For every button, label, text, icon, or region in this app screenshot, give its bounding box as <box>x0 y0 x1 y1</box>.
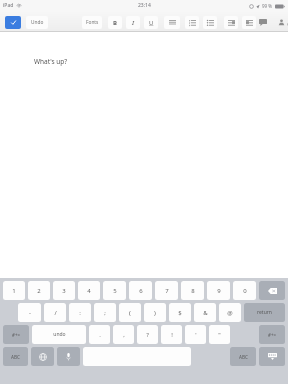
staticText: 2 <box>37 287 41 295</box>
staticText: 3 <box>62 287 66 295</box>
button[interactable]: 7 <box>155 281 178 300</box>
staticText: ! <box>171 331 173 339</box>
button[interactable]: - <box>18 303 41 322</box>
button[interactable]: . <box>89 325 110 344</box>
staticText: Fonts <box>86 19 99 26</box>
staticText: iPad <box>3 2 14 9</box>
staticText: Undo <box>31 19 44 26</box>
staticText: 0 <box>243 287 247 295</box>
button[interactable]: Dictation <box>57 347 80 366</box>
button[interactable]: 9 <box>207 281 230 300</box>
button[interactable]: 5 <box>103 281 126 300</box>
button[interactable]: / <box>44 303 66 322</box>
staticText: 9 <box>217 287 221 295</box>
staticText: @ <box>227 309 233 317</box>
button[interactable]: return <box>244 303 285 322</box>
staticText: ' <box>195 331 197 339</box>
button[interactable]: Numbered list <box>185 16 199 29</box>
staticText: 8 <box>191 287 195 295</box>
button[interactable]: ABC <box>230 347 256 366</box>
button[interactable]: ) <box>144 303 166 322</box>
button[interactable]: ? <box>137 325 158 344</box>
button[interactable]: ' <box>185 325 206 344</box>
staticText: #+= <box>268 332 276 338</box>
button[interactable]: 0 <box>233 281 256 300</box>
staticText: ? <box>146 331 149 339</box>
button[interactable]: " <box>209 325 230 344</box>
staticText: 23:14 <box>138 2 151 9</box>
staticText: undo <box>53 331 66 338</box>
staticText: " <box>218 331 221 339</box>
button[interactable]: Undo <box>26 16 48 29</box>
button[interactable]: 2 <box>28 281 50 300</box>
staticText: - <box>29 309 31 317</box>
staticText: ( <box>129 309 131 317</box>
button[interactable]: 3 <box>53 281 75 300</box>
staticText: / <box>54 309 57 317</box>
button[interactable]: @ <box>219 303 241 322</box>
button[interactable]: Underline <box>144 16 158 29</box>
button[interactable]: : <box>69 303 91 322</box>
staticText: 7 <box>165 287 169 295</box>
button[interactable]: , <box>113 325 134 344</box>
button[interactable]: ABC <box>3 347 28 366</box>
staticText: What's up? <box>34 57 68 66</box>
button[interactable]: Comments <box>256 15 270 29</box>
staticText: U <box>149 19 154 27</box>
button[interactable]: ( <box>119 303 141 322</box>
button[interactable]: Share <box>274 15 288 29</box>
button[interactable]: ; <box>94 303 116 322</box>
staticText: 5 <box>113 287 117 295</box>
button[interactable]: #+= <box>3 325 29 344</box>
button[interactable]: & <box>194 303 216 322</box>
button[interactable]: ! <box>161 325 182 344</box>
staticText: return <box>257 309 272 316</box>
button[interactable]: Increase indent <box>242 16 256 29</box>
staticText: B <box>113 19 117 27</box>
button[interactable]: 6 <box>129 281 152 300</box>
staticText: $ <box>178 309 182 317</box>
button[interactable]: Alignment <box>164 16 180 29</box>
button[interactable]: Decrease indent <box>224 16 238 29</box>
button[interactable]: Bulleted list <box>203 16 217 29</box>
button[interactable]: #+= <box>259 325 285 344</box>
staticText: ABC <box>11 354 20 360</box>
button[interactable]: Backspace <box>259 281 285 300</box>
staticText: 4 <box>87 287 91 295</box>
button[interactable]: Italic <box>126 16 140 29</box>
staticText: I <box>132 19 135 27</box>
button[interactable]: 1 <box>3 281 25 300</box>
button[interactable]: 4 <box>78 281 100 300</box>
button[interactable]: Fonts <box>82 16 102 29</box>
staticText: ) <box>154 309 156 317</box>
staticText: #+= <box>12 332 20 338</box>
staticText: 99 % <box>262 3 273 9</box>
button[interactable]: Hide keyboard <box>259 347 285 366</box>
button[interactable]: Done <box>5 16 21 29</box>
button[interactable]: undo <box>32 325 86 344</box>
staticText: ABC <box>239 354 248 360</box>
staticText: 6 <box>139 287 143 295</box>
button[interactable]: $ <box>169 303 191 322</box>
staticText: & <box>203 309 208 317</box>
staticText: : <box>79 309 81 317</box>
button[interactable]: 8 <box>181 281 204 300</box>
staticText: 1 <box>12 287 16 295</box>
staticText: . <box>99 331 101 339</box>
button[interactable]: Bold <box>108 16 122 29</box>
staticText: , <box>123 331 125 339</box>
button[interactable]: Change keyboard <box>31 347 54 366</box>
staticText: ; <box>104 309 106 317</box>
